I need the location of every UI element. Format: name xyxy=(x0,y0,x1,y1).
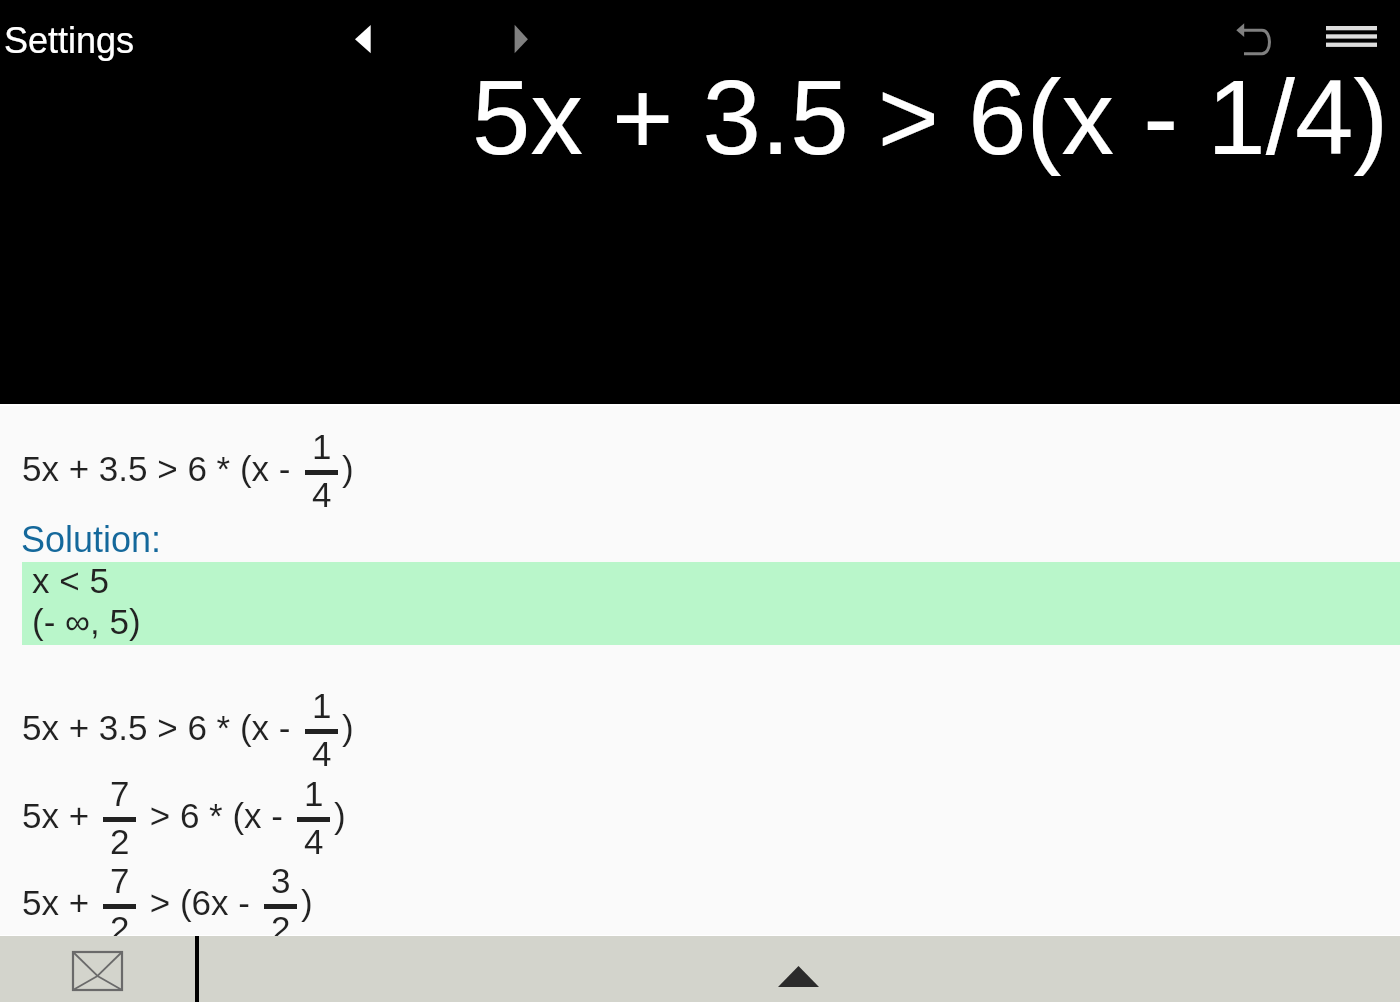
button[interactable]: Previous xyxy=(340,14,388,64)
button[interactable]: Next xyxy=(500,14,548,64)
staticText: 1 xyxy=(312,686,332,725)
staticText: 2 xyxy=(271,909,291,948)
staticText: 5x + 3.5 > 6 * (x - xyxy=(22,449,301,488)
staticText: > (6x - xyxy=(140,883,260,922)
staticText: 1 xyxy=(304,774,324,813)
staticText: 5x + xyxy=(22,796,99,835)
staticText: 4 xyxy=(304,822,324,861)
staticText: ) xyxy=(342,449,354,488)
staticText: 7 xyxy=(110,861,130,900)
staticText: 5x + xyxy=(22,883,99,922)
button[interactable]: x < 5 xyxy=(22,562,1400,645)
staticText: 1 xyxy=(312,427,332,466)
staticText: 5x + 3.5 > 6 * (x - xyxy=(22,708,301,747)
staticText: 4 xyxy=(312,734,332,773)
staticText: 7 xyxy=(110,774,130,813)
staticText: 2 xyxy=(110,909,130,948)
button[interactable]: Undo xyxy=(1226,12,1284,64)
staticText: Settings xyxy=(4,20,135,60)
staticText: ) xyxy=(342,708,354,747)
staticText: x < 5 xyxy=(32,561,109,600)
button[interactable]: Mail xyxy=(62,941,132,997)
staticText: ) xyxy=(334,796,346,835)
staticText: Solution: xyxy=(21,519,162,559)
button[interactable]: Settings xyxy=(0,4,150,60)
staticText: > 6 * (x - xyxy=(140,796,293,835)
staticText: ) xyxy=(301,883,313,922)
button[interactable]: Menu xyxy=(1316,12,1388,60)
staticText: 4 xyxy=(312,475,332,514)
button[interactable]: Scroll up xyxy=(768,954,830,998)
staticText: 3 xyxy=(271,861,291,900)
staticText: 2 xyxy=(110,822,130,861)
staticText: (- ∞, 5) xyxy=(32,602,141,641)
staticText: 5x + 3.5 > 6(x - 1/4) xyxy=(472,59,1389,176)
